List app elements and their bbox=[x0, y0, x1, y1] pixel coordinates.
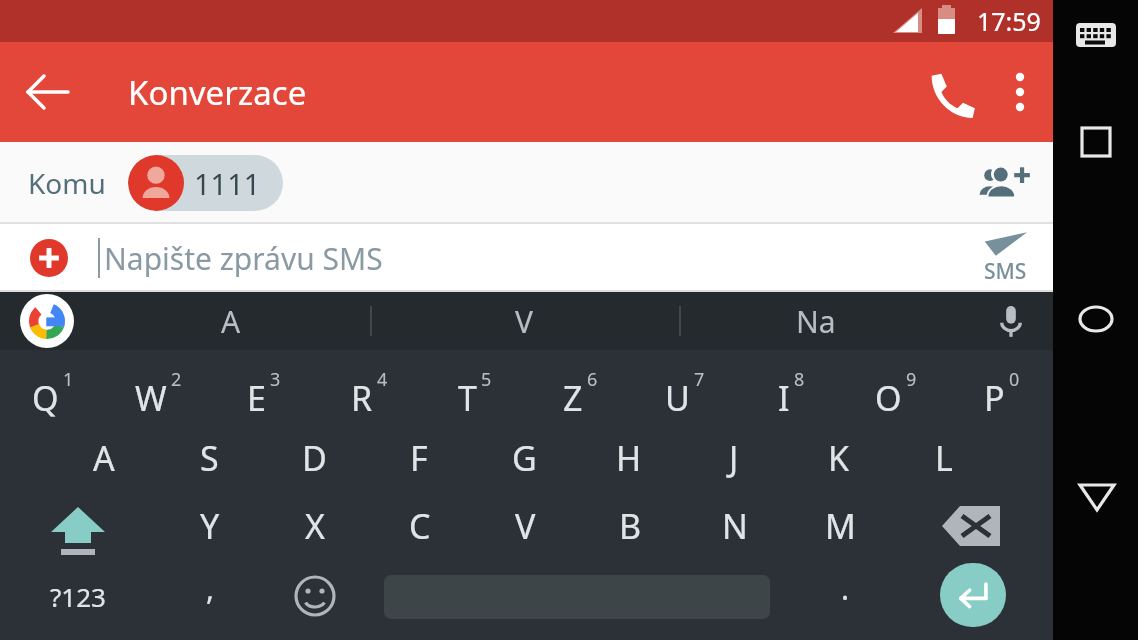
button[interactable]: More options bbox=[993, 65, 1047, 119]
staticText: Na bbox=[796, 301, 836, 342]
staticText: I bbox=[778, 375, 790, 421]
staticText: U bbox=[665, 375, 690, 421]
staticText: B bbox=[619, 503, 642, 549]
button[interactable]: G bbox=[472, 425, 576, 491]
staticText: SMS bbox=[984, 257, 1027, 286]
button[interactable]: Back bbox=[1078, 481, 1116, 513]
button[interactable]: N bbox=[683, 493, 787, 559]
staticText: V bbox=[515, 503, 536, 549]
staticText: E bbox=[247, 375, 266, 421]
staticText: N bbox=[722, 503, 748, 549]
button[interactable]: . bbox=[800, 563, 890, 629]
button[interactable]: Shift bbox=[26, 493, 130, 559]
button[interactable]: I bbox=[737, 350, 841, 418]
staticText: S bbox=[200, 435, 219, 481]
staticText: Q bbox=[32, 375, 59, 421]
button[interactable]: F bbox=[367, 425, 471, 491]
staticText: 3 bbox=[270, 367, 281, 392]
staticText: G bbox=[512, 435, 537, 481]
button[interactable]: D bbox=[262, 425, 366, 491]
staticText: R bbox=[351, 375, 373, 421]
button[interactable]: Q bbox=[0, 350, 103, 418]
button[interactable]: X bbox=[263, 493, 367, 559]
staticText: Konverzace bbox=[128, 70, 307, 115]
staticText: F bbox=[410, 435, 428, 481]
button[interactable]: A bbox=[52, 425, 156, 491]
button[interactable]: Add recipient bbox=[975, 155, 1031, 211]
button[interactable]: V bbox=[454, 292, 594, 350]
button[interactable]: V bbox=[473, 493, 577, 559]
staticText: 9 bbox=[906, 367, 917, 392]
button[interactable]: K bbox=[787, 425, 891, 491]
staticText: 6 bbox=[587, 367, 598, 392]
button[interactable]: Voice input bbox=[989, 299, 1033, 343]
button[interactable]: O bbox=[842, 350, 946, 418]
button[interactable]: , bbox=[160, 563, 260, 629]
button[interactable]: Google bbox=[20, 294, 74, 348]
button[interactable]: Emoji bbox=[284, 563, 346, 629]
button[interactable]: S bbox=[157, 425, 261, 491]
staticText: . bbox=[841, 568, 850, 609]
button[interactable]: Hide keyboard bbox=[1075, 20, 1117, 52]
button[interactable]: A bbox=[161, 292, 301, 350]
staticText: D bbox=[302, 435, 327, 481]
button[interactable]: E bbox=[210, 350, 314, 418]
button[interactable]: B bbox=[578, 493, 682, 559]
staticText: 1111 bbox=[194, 164, 261, 203]
button[interactable]: R bbox=[315, 350, 419, 418]
button[interactable]: T bbox=[421, 350, 525, 418]
staticText: Komu bbox=[28, 164, 106, 202]
button[interactable]: Home bbox=[1078, 302, 1114, 338]
staticText: ?123 bbox=[50, 579, 106, 614]
staticText: 2 bbox=[171, 367, 182, 392]
button[interactable]: Back bbox=[22, 64, 78, 120]
staticText: O bbox=[875, 375, 902, 421]
button[interactable]: Enter bbox=[940, 563, 1006, 627]
staticText: L bbox=[935, 435, 953, 481]
staticText: Napište zprávu SMS bbox=[104, 238, 383, 279]
button[interactable]: 1111 bbox=[128, 155, 283, 211]
button[interactable]: Backspace bbox=[920, 493, 1024, 559]
button[interactable]: C bbox=[368, 493, 472, 559]
staticText: 5 bbox=[481, 367, 492, 392]
staticText: Z bbox=[563, 375, 583, 421]
staticText: Y bbox=[200, 503, 220, 549]
button[interactable]: J bbox=[682, 425, 786, 491]
button[interactable]: Call bbox=[923, 65, 977, 119]
button[interactable]: P bbox=[948, 350, 1052, 418]
staticText: , bbox=[206, 568, 215, 609]
staticText: J bbox=[729, 435, 739, 481]
staticText: T bbox=[458, 375, 477, 421]
button[interactable]: L bbox=[892, 425, 996, 491]
button[interactable]: M bbox=[788, 493, 892, 559]
staticText: H bbox=[616, 435, 642, 481]
staticText: A bbox=[93, 435, 115, 481]
staticText: K bbox=[828, 435, 850, 481]
staticText: 8 bbox=[794, 367, 805, 392]
staticText: P bbox=[984, 375, 1005, 421]
staticText: C bbox=[409, 503, 431, 549]
staticText: 0 bbox=[1009, 367, 1020, 392]
staticText: X bbox=[305, 503, 325, 549]
button[interactable]: W bbox=[104, 350, 208, 418]
staticText: 7 bbox=[694, 367, 705, 392]
staticText: W bbox=[135, 375, 167, 421]
button[interactable]: ?123 bbox=[26, 563, 130, 629]
button[interactable]: Z bbox=[526, 350, 630, 418]
staticText: 4 bbox=[377, 367, 388, 392]
button[interactable]: Recents bbox=[1080, 126, 1112, 158]
button[interactable]: Y bbox=[158, 493, 262, 559]
staticText: A bbox=[221, 301, 241, 342]
button[interactable]: H bbox=[577, 425, 681, 491]
button[interactable]: Na bbox=[746, 292, 886, 350]
staticText: 1 bbox=[63, 367, 74, 392]
button[interactable]: SMS bbox=[969, 231, 1041, 286]
staticText: M bbox=[825, 503, 856, 549]
staticText: 17:59 bbox=[977, 4, 1041, 38]
button[interactable]: Attach bbox=[30, 239, 68, 277]
button[interactable]: U bbox=[631, 350, 735, 418]
staticText: V bbox=[515, 301, 533, 342]
